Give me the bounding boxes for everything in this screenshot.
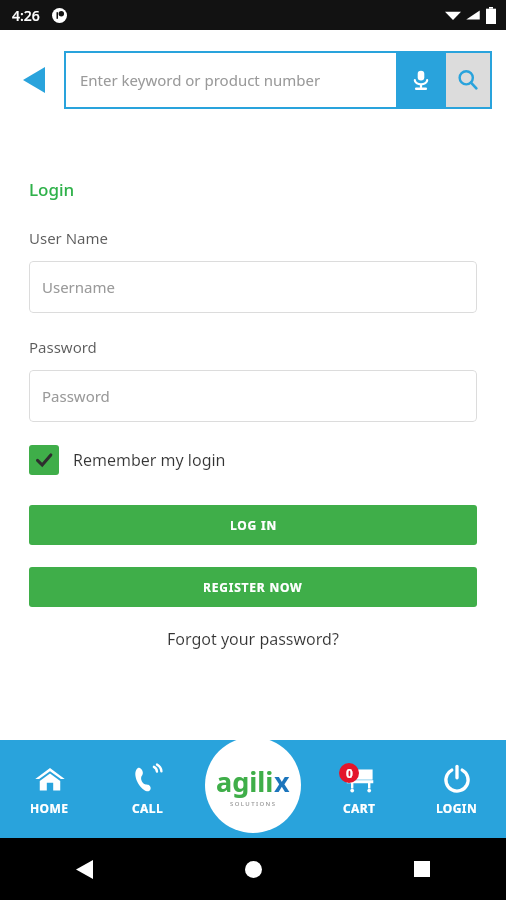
button[interactable]: HOME [0,740,99,838]
staticText: 4:26 [12,6,40,25]
staticText: Login [29,178,75,201]
staticText: HOME [30,800,69,816]
button[interactable]: 0 [310,740,408,838]
button[interactable]: Back [10,56,58,104]
staticText: REGISTER NOW [203,579,303,595]
button[interactable]: LOG IN [29,505,477,545]
staticText: SOLUTIONS [230,800,277,808]
button[interactable]: Forgot your password? [167,628,339,650]
staticText: LOG IN [230,517,277,533]
button[interactable]: Back [60,845,108,893]
staticText: Password [42,386,110,406]
staticText: Remember my login [73,449,226,471]
staticText: 0 [346,765,353,781]
button[interactable]: Remember my login [29,445,226,475]
staticText: CART [343,800,376,816]
button[interactable]: Enter keyword or product number [66,53,396,107]
button[interactable]: Recent apps [398,845,446,893]
staticText: User Name [29,228,109,248]
button[interactable]: LOGIN [408,740,506,838]
button[interactable]: Home [229,845,277,893]
staticText: LOGIN [436,800,478,816]
button[interactable]: REGISTER NOW [29,567,477,607]
staticText: agili [216,763,274,800]
button[interactable]: Password [29,370,477,422]
button[interactable]: Username [29,261,477,313]
staticText: Enter keyword or product number [80,70,321,90]
staticText: Username [42,277,115,297]
button[interactable]: Search [446,53,490,107]
button[interactable]: Voice search [398,51,444,109]
staticText: x [274,763,290,800]
staticText: Password [29,337,97,357]
button[interactable]: Agilix Solutions home [205,737,301,833]
staticText: CALL [132,800,164,816]
button[interactable]: CALL [99,740,197,838]
